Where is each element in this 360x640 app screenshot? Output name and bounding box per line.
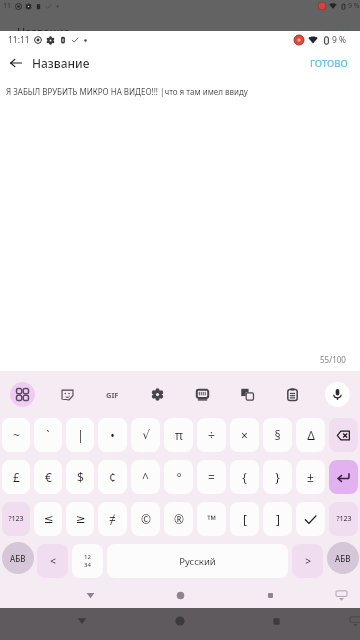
staticText: 9 % <box>332 34 347 46</box>
button[interactable]: { <box>230 460 259 494</box>
staticText: ≤ <box>43 512 54 526</box>
staticText: Я ЗАБЫЛ ВРУБИТЬ МИКРО НА ВИДЕО!!! |что я… <box>6 86 248 97</box>
button[interactable]: Recents <box>262 608 290 634</box>
staticText: ± <box>307 469 314 485</box>
staticText: • <box>110 427 115 443</box>
staticText: ≥ <box>75 512 86 526</box>
button[interactable]: Clipboard <box>270 371 315 418</box>
button[interactable]: ?123 <box>2 502 30 536</box>
staticText: ÷ <box>208 427 215 443</box>
button[interactable]: ГОТОВО <box>298 51 360 76</box>
button[interactable]: 12 34 <box>72 544 103 578</box>
button[interactable]: Hide keyboard <box>346 612 360 630</box>
button[interactable]: Home <box>166 582 194 608</box>
staticText: { <box>242 469 247 485</box>
button[interactable]: Check <box>296 502 325 536</box>
button[interactable]: • <box>98 418 127 452</box>
button[interactable]: Translate <box>225 371 270 418</box>
button[interactable]: ≥ <box>66 502 94 536</box>
staticText: ≠ <box>109 511 116 527</box>
staticText: Δ <box>307 427 315 443</box>
staticText: | <box>77 427 84 443</box>
staticText: АБВ <box>10 553 26 564</box>
button[interactable]: Hide keyboard <box>332 586 350 604</box>
button[interactable]: Backspace <box>329 418 358 452</box>
button[interactable]: © <box>131 502 160 536</box>
button[interactable]: Recents <box>256 582 284 608</box>
button[interactable]: Settings <box>135 371 180 418</box>
staticText: € <box>45 469 52 485</box>
button[interactable]: × <box>230 418 259 452</box>
staticText: § <box>274 427 281 443</box>
button[interactable]: Δ <box>296 418 325 452</box>
staticText: GIF <box>106 390 119 400</box>
staticText: 11 <box>3 1 12 11</box>
button[interactable]: ^ <box>131 460 160 494</box>
staticText: ?123 <box>8 514 24 524</box>
button[interactable]: ≤ <box>34 502 62 536</box>
staticText: АБВ <box>335 553 351 564</box>
button[interactable]: √ <box>131 418 160 452</box>
button[interactable]: ¢ <box>98 460 127 494</box>
button[interactable]: > <box>292 544 323 578</box>
staticText: ГОТОВО <box>323 27 359 39</box>
button[interactable]: ® <box>164 502 193 536</box>
button[interactable]: Stickers <box>45 371 90 418</box>
staticText: ?123 <box>336 514 352 524</box>
button[interactable]: ≠ <box>98 502 127 536</box>
button[interactable]: GIF <box>90 371 135 418</box>
staticText: π <box>175 427 183 443</box>
staticText: ` <box>46 427 50 443</box>
staticText: √ <box>142 428 150 442</box>
button[interactable]: Back <box>0 49 32 77</box>
button[interactable]: $ <box>66 460 94 494</box>
button[interactable]: Apps <box>0 371 45 418</box>
button[interactable]: ÷ <box>197 418 226 452</box>
staticText: Русский <box>179 555 216 568</box>
button[interactable]: < <box>37 544 68 578</box>
staticText: = <box>208 469 215 485</box>
button[interactable]: £ <box>2 460 30 494</box>
staticText: ° <box>176 469 182 485</box>
staticText: ¢ <box>109 469 116 485</box>
staticText: Название <box>32 55 90 71</box>
button[interactable]: } <box>263 460 292 494</box>
staticText: $ <box>77 469 84 485</box>
button[interactable]: Home <box>166 608 194 634</box>
button[interactable]: Voice input <box>315 371 360 418</box>
staticText: × <box>241 427 248 443</box>
button[interactable]: ° <box>164 460 193 494</box>
button[interactable]: ± <box>296 460 325 494</box>
staticText: £ <box>13 469 20 485</box>
button[interactable]: = <box>197 460 226 494</box>
staticText: ] <box>276 511 280 527</box>
staticText: } <box>275 469 280 485</box>
staticText: ™ <box>207 511 217 527</box>
button[interactable]: § <box>263 418 292 452</box>
staticText: © <box>141 511 151 527</box>
button[interactable]: € <box>34 460 62 494</box>
button[interactable]: Keyboard layouts <box>180 371 225 418</box>
button[interactable]: АБВ <box>327 542 359 574</box>
button[interactable]: | <box>66 418 94 452</box>
button[interactable]: АБВ <box>2 542 34 574</box>
button[interactable]: ] <box>263 502 292 536</box>
button[interactable]: Русский <box>107 544 288 578</box>
button[interactable]: Enter <box>329 460 358 494</box>
button[interactable]: ?123 <box>329 502 358 536</box>
staticText: Название <box>17 24 70 39</box>
staticText: [ <box>243 511 247 527</box>
button[interactable]: π <box>164 418 193 452</box>
staticText: ГОТОВО <box>310 57 348 70</box>
staticText: ^ <box>142 469 149 485</box>
staticText: ~ <box>13 427 20 443</box>
button[interactable]: Back <box>68 608 96 634</box>
button[interactable]: [ <box>230 502 259 536</box>
staticText: 12 34 <box>84 553 91 569</box>
button[interactable]: ` <box>34 418 62 452</box>
button[interactable]: ~ <box>2 418 30 452</box>
staticText: 9 % <box>348 1 360 11</box>
button[interactable]: ™ <box>197 502 226 536</box>
staticText: 55/100 <box>320 354 346 365</box>
button[interactable]: Back <box>76 582 104 608</box>
